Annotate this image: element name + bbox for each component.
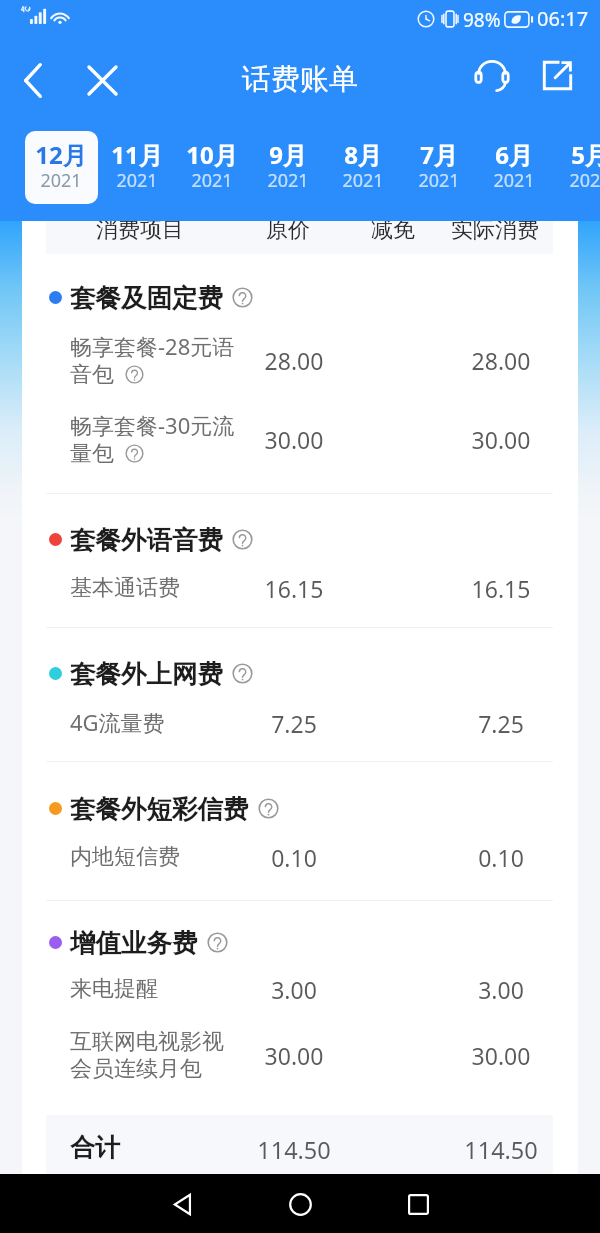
button[interactable] <box>402 131 475 204</box>
button[interactable] <box>49 802 62 815</box>
staticText: 6月 <box>464 138 564 171</box>
staticText: 话费账单 <box>242 61 358 98</box>
staticText: 8月 <box>313 138 413 171</box>
staticText: 消费项目 <box>96 221 184 244</box>
button[interactable] <box>49 667 62 680</box>
staticText: 套餐外上网费 <box>70 658 223 690</box>
staticText: 互联网电视影视 会员连续月包 <box>70 1029 224 1083</box>
button[interactable]: Info <box>232 663 253 684</box>
button[interactable]: Close <box>77 55 127 105</box>
button[interactable]: Info <box>207 932 228 953</box>
button[interactable]: Info <box>125 365 144 384</box>
staticText: 12月 <box>11 138 111 171</box>
staticText: 30.00 <box>431 1040 571 1071</box>
staticText: 5月 <box>540 138 600 171</box>
staticText: 2021 <box>389 168 489 193</box>
staticText: 内地短信费 <box>70 844 180 871</box>
staticText: 合计 <box>70 1132 120 1163</box>
staticText: 7月 <box>389 138 489 171</box>
staticText: 2021 <box>540 168 600 193</box>
staticText: 畅享套餐-28元语 音包 <box>70 334 235 389</box>
staticText: 114.50 <box>431 1134 571 1166</box>
staticText: 增值业务费 <box>70 927 198 959</box>
staticText: 30.00 <box>224 424 364 455</box>
button[interactable] <box>327 131 400 204</box>
staticText: 16.15 <box>431 573 571 604</box>
button[interactable] <box>49 936 62 949</box>
staticText: 3.00 <box>431 974 571 1005</box>
staticText: 2021 <box>464 168 564 193</box>
button[interactable] <box>176 131 249 204</box>
staticText: 9月 <box>238 138 338 171</box>
staticText: 16.15 <box>224 573 364 604</box>
button[interactable] <box>553 131 600 204</box>
staticText: 套餐外语音费 <box>70 524 223 556</box>
button[interactable] <box>251 131 324 204</box>
button[interactable]: Home <box>276 1180 324 1228</box>
staticText: 原价 <box>266 221 310 244</box>
staticText: 06:17 <box>537 5 589 32</box>
staticText: 0.10 <box>224 842 364 873</box>
staticText: 10月 <box>162 138 262 171</box>
button[interactable] <box>100 131 173 204</box>
button[interactable]: Share <box>535 53 579 97</box>
staticText: 11月 <box>87 138 187 171</box>
staticText: 2021 <box>162 168 262 193</box>
button[interactable] <box>25 131 98 204</box>
staticText: 30.00 <box>224 1040 364 1071</box>
staticText: 3.00 <box>224 974 364 1005</box>
staticText: 畅享套餐-30元流 量包 <box>70 413 235 468</box>
staticText: 套餐外短彩信费 <box>70 793 249 825</box>
button[interactable] <box>478 131 551 204</box>
staticText: 来电提醒 <box>70 976 158 1003</box>
staticText: 28.00 <box>224 345 364 376</box>
button[interactable]: Back <box>159 1180 207 1228</box>
staticText: 基本通话费 <box>70 575 180 602</box>
button[interactable]: Info <box>258 798 279 819</box>
button[interactable]: Back <box>8 55 58 105</box>
button[interactable]: Customer service <box>472 57 512 97</box>
staticText: 114.50 <box>224 1134 364 1166</box>
staticText: 7.25 <box>431 708 571 739</box>
button[interactable] <box>49 533 62 546</box>
staticText: 28.00 <box>431 345 571 376</box>
staticText: 2021 <box>11 168 111 193</box>
staticText: 98% <box>463 7 501 33</box>
staticText: 30.00 <box>431 424 571 455</box>
staticText: 4G流量费 <box>70 710 165 738</box>
staticText: 7.25 <box>224 708 364 739</box>
staticText: 减免 <box>371 221 415 244</box>
staticText: 套餐及固定费 <box>70 282 223 314</box>
staticText: 2021 <box>313 168 413 193</box>
staticText: 0.10 <box>431 842 571 873</box>
button[interactable]: Info <box>232 529 253 550</box>
staticText: 实际消费 <box>451 221 539 244</box>
button[interactable]: Info <box>232 287 253 308</box>
staticText: 2021 <box>238 168 338 193</box>
button[interactable]: Info <box>125 444 144 463</box>
staticText: 2021 <box>87 168 187 193</box>
button[interactable] <box>49 291 62 304</box>
button[interactable]: Recents <box>394 1180 442 1228</box>
